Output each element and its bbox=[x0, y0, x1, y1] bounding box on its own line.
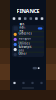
button[interactable]: Other bbox=[12, 52, 44, 57]
button[interactable]: More bbox=[38, 27, 42, 30]
staticText: This week bbox=[19, 33, 26, 35]
staticText: Mon bbox=[18, 52, 21, 54]
button[interactable]: Transport bbox=[12, 37, 44, 42]
button[interactable]: Utilities bbox=[12, 42, 44, 47]
staticText: Groceries bbox=[18, 32, 31, 35]
staticText: FINANCE bbox=[16, 7, 39, 15]
staticText: Subscriptions bbox=[18, 45, 32, 52]
staticText: Utilities bbox=[18, 42, 29, 45]
button[interactable]: Cards bbox=[28, 80, 37, 86]
button[interactable]: Quick action 3 bbox=[22, 17, 28, 20]
button[interactable]: Quick action 1 bbox=[11, 17, 17, 20]
button[interactable]: Quick action 2 bbox=[17, 17, 22, 20]
button[interactable]: Subscriptions bbox=[12, 47, 44, 52]
staticText: Spending bbox=[19, 22, 25, 33]
staticText: Transport bbox=[18, 37, 31, 40]
staticText: Other bbox=[18, 52, 26, 55]
staticText: Today bbox=[18, 40, 23, 42]
button[interactable]: Stats bbox=[19, 80, 28, 86]
staticText: Yesterday bbox=[18, 45, 26, 47]
button[interactable]: Home bbox=[10, 80, 19, 86]
button[interactable]: Groceries bbox=[12, 32, 44, 37]
staticText: Sun bbox=[18, 55, 21, 57]
staticText: Today bbox=[18, 35, 23, 37]
button[interactable]: Quick action 6 bbox=[39, 17, 45, 20]
button[interactable]: Profile bbox=[37, 80, 46, 86]
button[interactable]: Quick action 4 bbox=[28, 17, 34, 20]
button[interactable]: Quick action 5 bbox=[34, 17, 39, 20]
button[interactable]: Toggle bbox=[33, 67, 37, 69]
